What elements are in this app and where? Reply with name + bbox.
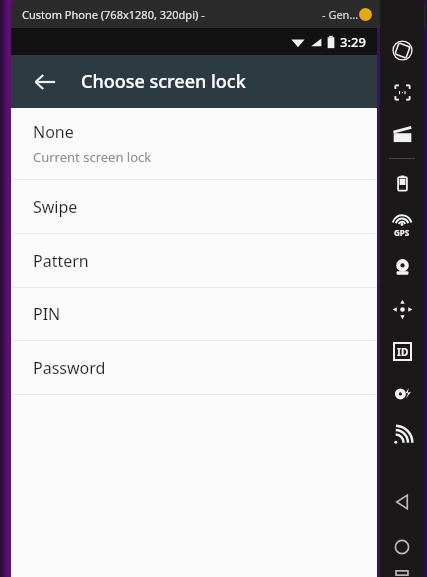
button[interactable]: Directional pad [380,288,424,330]
button[interactable]: PIN [11,288,377,340]
staticText: GPS [394,227,410,238]
staticText: PIN [33,303,61,325]
button[interactable]: Camera [380,246,424,288]
button[interactable]: Snapshot [380,372,424,414]
button[interactable]: Phone ID [380,330,424,372]
staticText: - Gen... [322,7,359,22]
button[interactable]: Rotate [380,29,424,71]
staticText: Swipe [33,196,78,218]
staticText: Choose screen lock [81,69,246,94]
button[interactable]: Recent apps [380,569,424,577]
button[interactable]: Battery [380,162,424,204]
staticText: ID [397,345,409,359]
button[interactable]: None [11,108,377,179]
button[interactable]: Cellular [380,414,424,456]
button[interactable]: Swipe [11,180,377,233]
staticText: None [33,121,74,143]
button[interactable]: Back [380,479,424,524]
button[interactable]: Back [24,61,66,103]
staticText: 3:29 [340,33,366,51]
button[interactable]: Zoom 1 to 1 [380,71,424,113]
staticText: Current screen lock [33,148,152,166]
staticText: Custom Phone (768x1280, 320dpi) - [22,7,205,22]
staticText: Password [33,357,106,379]
button[interactable]: Record screen [380,113,424,155]
button[interactable]: Minimize [359,8,372,21]
staticText: Pattern [33,250,89,272]
button[interactable]: Home [380,524,424,569]
button[interactable]: GPS location [380,204,424,246]
button[interactable]: Pattern [11,234,377,287]
button[interactable]: Password [11,341,377,394]
